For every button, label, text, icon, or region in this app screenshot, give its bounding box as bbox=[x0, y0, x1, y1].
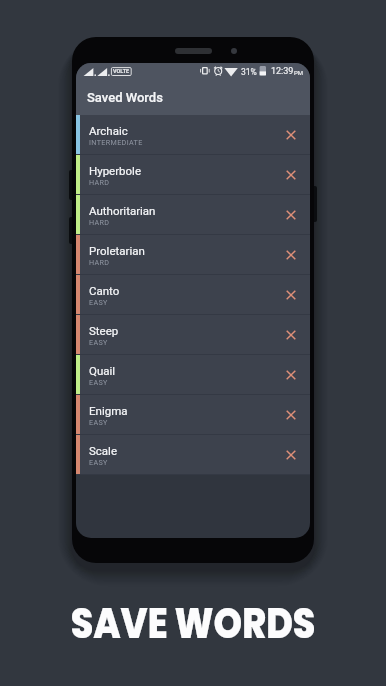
staticText: INTERMEDIATE bbox=[89, 138, 143, 146]
button[interactable]: Delete Proletarian bbox=[272, 235, 310, 275]
button[interactable]: Saved Words bbox=[76, 80, 310, 115]
button[interactable]: Steep bbox=[76, 315, 310, 355]
staticText: PM bbox=[294, 69, 304, 76]
staticText: EASY bbox=[89, 298, 108, 306]
staticText: HARD bbox=[89, 258, 110, 266]
staticText: Canto bbox=[89, 284, 120, 297]
staticText: EASY bbox=[89, 458, 108, 466]
staticText: Enigma bbox=[89, 404, 128, 417]
staticText: Authoritarian bbox=[89, 204, 156, 217]
staticText: Quail bbox=[89, 364, 116, 377]
staticText: 31% bbox=[241, 67, 257, 77]
button[interactable]: Hyperbole bbox=[76, 155, 310, 195]
staticText: EASY bbox=[89, 338, 108, 346]
staticText: Proletarian bbox=[89, 244, 145, 257]
button[interactable]: Canto bbox=[76, 275, 310, 315]
staticText: SAVE WORDS bbox=[70, 594, 315, 652]
button[interactable]: Delete Steep bbox=[272, 315, 310, 355]
button[interactable]: Delete Authoritarian bbox=[272, 195, 310, 235]
button[interactable]: Delete Canto bbox=[272, 275, 310, 315]
staticText: EASY bbox=[89, 378, 108, 386]
staticText: Steep bbox=[89, 324, 119, 337]
staticText: Hyperbole bbox=[89, 164, 142, 177]
staticText: HARD bbox=[89, 178, 110, 186]
staticText: HARD bbox=[89, 218, 110, 226]
staticText: 12:39 bbox=[271, 66, 294, 77]
staticText: VOLTE bbox=[113, 68, 130, 74]
button[interactable]: Scale bbox=[76, 435, 310, 475]
staticText: Archaic bbox=[89, 124, 128, 137]
button[interactable]: Proletarian bbox=[76, 235, 310, 275]
button[interactable]: Delete Hyperbole bbox=[272, 155, 310, 195]
button[interactable]: Enigma bbox=[76, 395, 310, 435]
button[interactable]: Delete Enigma bbox=[272, 395, 310, 435]
staticText: Saved Words bbox=[87, 90, 163, 105]
button[interactable]: Quail bbox=[76, 355, 310, 395]
staticText: EASY bbox=[89, 418, 108, 426]
button[interactable]: Delete Archaic bbox=[272, 115, 310, 155]
staticText: Scale bbox=[89, 444, 117, 457]
button[interactable]: Authoritarian bbox=[76, 195, 310, 235]
button[interactable]: Delete Quail bbox=[272, 355, 310, 395]
button[interactable]: Archaic bbox=[76, 115, 310, 155]
button[interactable]: Delete Scale bbox=[272, 435, 310, 475]
